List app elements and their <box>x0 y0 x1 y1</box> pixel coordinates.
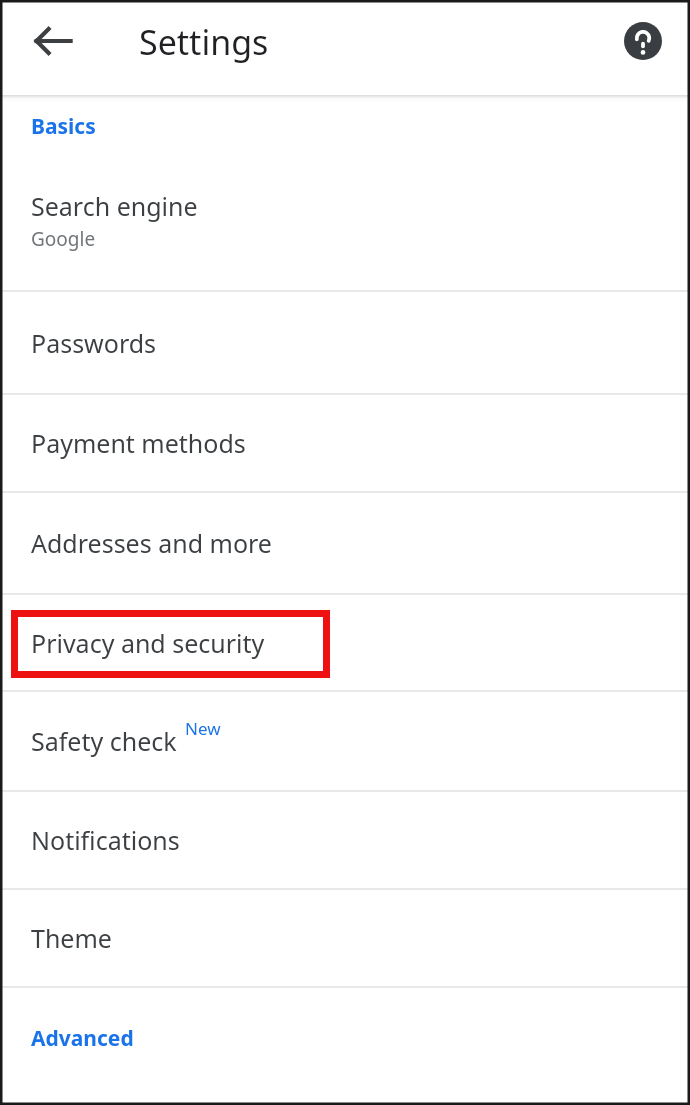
button[interactable]: Back <box>25 13 81 69</box>
button[interactable]: Addresses and more <box>0 493 690 593</box>
button[interactable]: Payment methods <box>0 395 690 491</box>
staticText: Privacy and security <box>31 626 265 660</box>
staticText: Notifications <box>31 823 180 857</box>
staticText: Passwords <box>31 326 157 360</box>
staticText: Theme <box>31 921 112 955</box>
staticText: Safety check <box>31 724 177 758</box>
staticText: Addresses and more <box>31 526 272 560</box>
button[interactable]: Search engine <box>0 150 690 290</box>
button[interactable]: Passwords <box>0 292 690 393</box>
staticText: Basics <box>31 112 96 141</box>
button[interactable]: Privacy and security <box>0 595 690 690</box>
button[interactable]: Basics <box>0 102 690 150</box>
staticText: Search engine <box>31 189 198 223</box>
button[interactable]: Theme <box>0 890 690 986</box>
button[interactable]: Notifications <box>0 792 690 888</box>
button[interactable]: Help <box>615 13 671 69</box>
staticText: Google <box>31 226 96 252</box>
button[interactable]: Safety check <box>0 692 690 790</box>
button[interactable]: Advanced <box>0 988 690 1088</box>
staticText: Settings <box>139 19 269 65</box>
staticText: Payment methods <box>31 426 246 460</box>
staticText: New <box>185 717 221 740</box>
staticText: Advanced <box>31 1024 134 1053</box>
